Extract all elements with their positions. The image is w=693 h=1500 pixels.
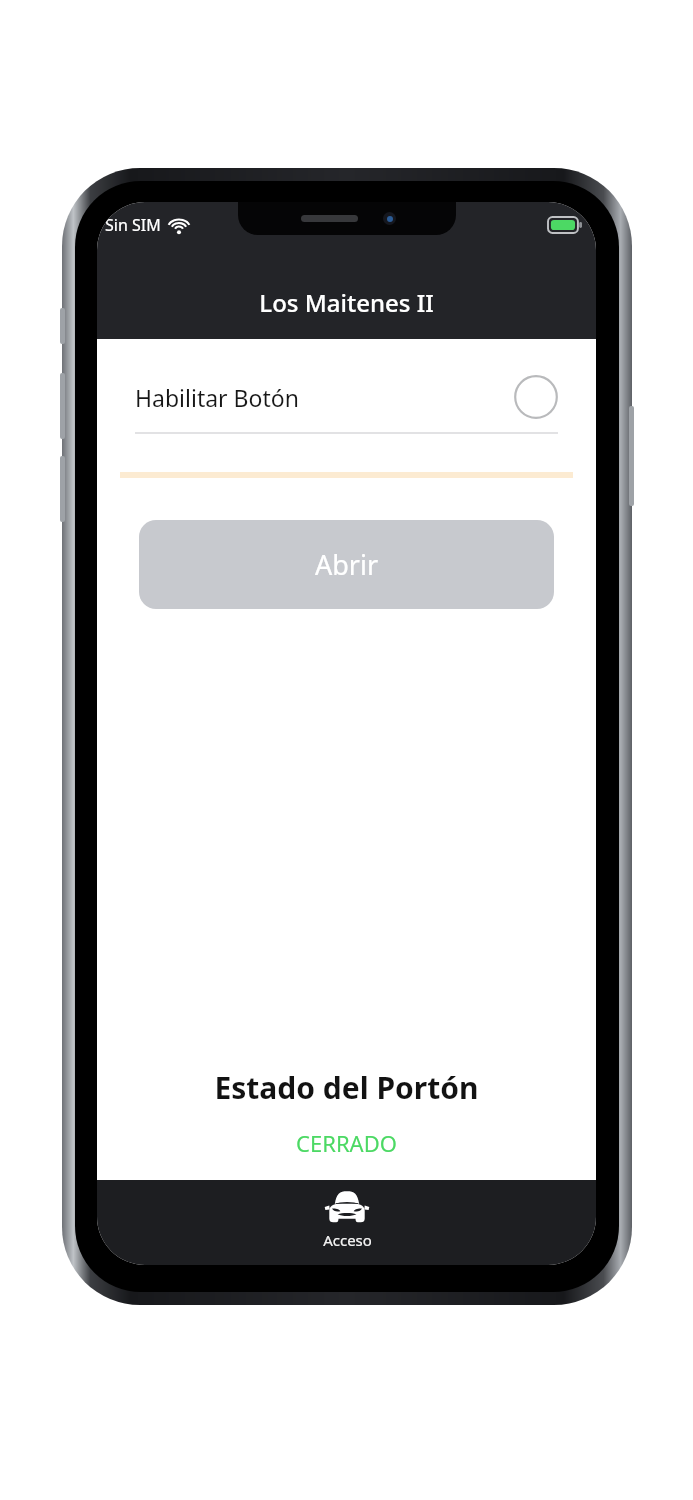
button[interactable]: Abrir (139, 520, 554, 609)
staticText: Abrir (315, 546, 379, 583)
staticText: Habilitar Botón (135, 382, 299, 413)
staticText: Los Maitenes II (259, 286, 434, 319)
staticText: Sin SIM (105, 214, 161, 236)
staticText: CERRADO (97, 1128, 596, 1158)
button[interactable]: Acceso (277, 1180, 417, 1265)
staticText: Acceso (323, 1230, 372, 1250)
staticText: Estado del Portón (97, 1067, 596, 1108)
button[interactable]: Habilitar Botón (135, 362, 558, 432)
